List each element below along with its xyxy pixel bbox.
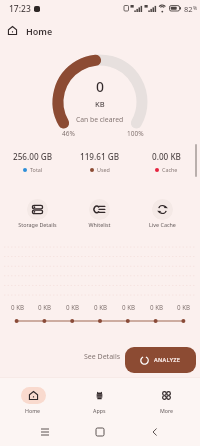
staticText: Live Cache [149, 221, 176, 228]
staticText: Cache [162, 166, 178, 173]
button[interactable]: Storage Details [6, 199, 68, 228]
staticText: 0 KB [122, 303, 135, 311]
staticText: Used [97, 166, 110, 173]
button[interactable]: Back [148, 425, 162, 439]
staticText: More [160, 407, 174, 414]
staticText: KB [95, 99, 105, 109]
staticText: Can be cleared [76, 115, 124, 124]
button[interactable]: Home [0, 378, 66, 418]
button[interactable]: Home [4, 22, 21, 39]
staticText: % [193, 5, 198, 12]
button[interactable]: See Details [84, 352, 121, 362]
button[interactable]: Home button [93, 425, 107, 439]
staticText: 0 KB [94, 303, 107, 311]
staticText: 119.61 GB [80, 151, 120, 162]
staticText: ANALYZE [154, 356, 181, 364]
button[interactable]: ANALYZE [125, 347, 196, 373]
staticText: 0 KB [66, 303, 79, 311]
staticText: 256.00 GB [13, 151, 53, 162]
staticText: Total [30, 166, 43, 173]
staticText: 100% [127, 129, 144, 138]
staticText: Whitelist [88, 221, 111, 228]
staticText: 0.00 KB [152, 151, 181, 162]
button[interactable]: More [133, 378, 200, 418]
button[interactable]: Recents [38, 425, 52, 439]
staticText: 46% [62, 129, 75, 138]
staticText: Home [26, 25, 53, 37]
staticText: 17:23 [9, 3, 31, 15]
button[interactable]: Live Cache [131, 199, 194, 228]
staticText: 0 [96, 77, 105, 96]
staticText: Home [25, 407, 41, 414]
staticText: 82 [184, 4, 193, 14]
staticText: 0 KB [38, 303, 51, 311]
staticText: Apps [93, 407, 106, 414]
button[interactable]: Apps [66, 378, 133, 418]
staticText: 0 KB [150, 303, 163, 311]
staticText: 0 KB [11, 303, 24, 311]
staticText: Storage Details [18, 221, 57, 228]
button[interactable]: Whitelist [68, 199, 131, 228]
staticText: 0 KB [177, 303, 190, 311]
